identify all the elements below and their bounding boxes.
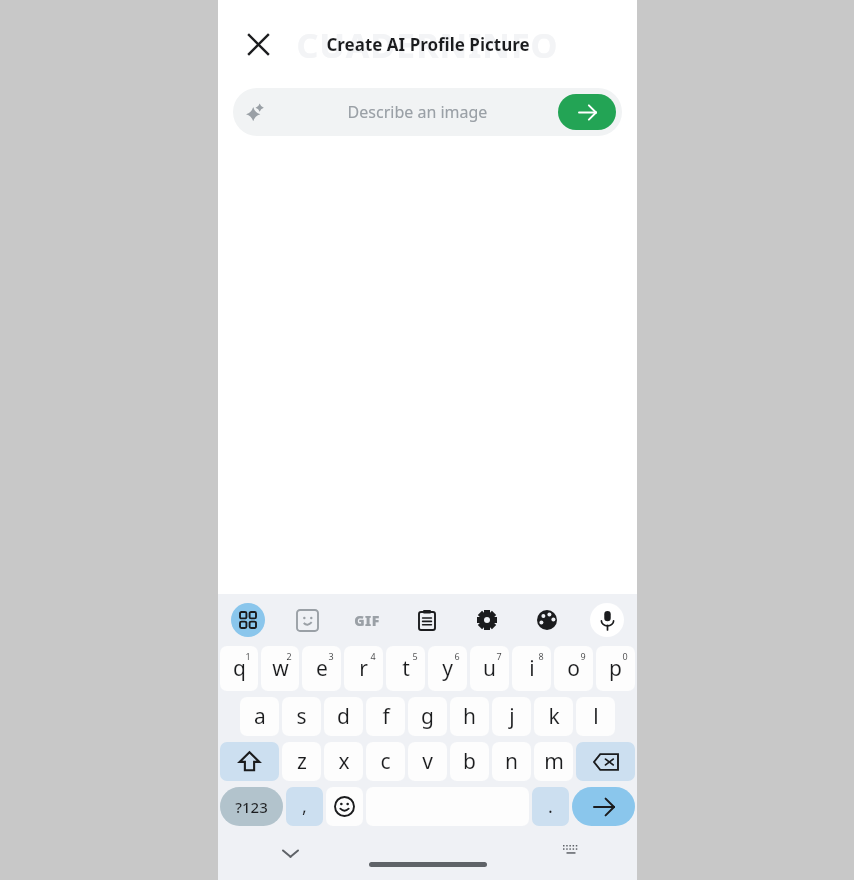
staticText: f bbox=[382, 702, 390, 731]
staticText: l bbox=[593, 702, 599, 731]
button[interactable]: r bbox=[344, 646, 383, 691]
button[interactable]: b bbox=[450, 742, 489, 781]
staticText: CUADERNINFO bbox=[296, 22, 559, 68]
staticText: 7 bbox=[496, 650, 502, 662]
staticText: 5 bbox=[412, 650, 418, 662]
button[interactable]: Stickers bbox=[277, 594, 337, 646]
button[interactable]: Hide keyboard bbox=[270, 833, 310, 873]
button[interactable]: p bbox=[596, 646, 635, 691]
button[interactable]: . bbox=[532, 787, 569, 826]
button[interactable]: Backspace bbox=[576, 742, 635, 781]
staticText: p bbox=[609, 654, 622, 683]
staticText: 0 bbox=[622, 650, 628, 662]
button[interactable]: a bbox=[240, 697, 279, 736]
button[interactable]: e bbox=[302, 646, 341, 691]
staticText: x bbox=[338, 747, 350, 776]
staticText: z bbox=[297, 747, 307, 776]
staticText: g bbox=[421, 702, 434, 731]
button[interactable]: Generate bbox=[558, 94, 616, 130]
staticText: a bbox=[254, 702, 266, 731]
button[interactable]: w bbox=[261, 646, 299, 691]
staticText: i bbox=[529, 654, 535, 683]
button[interactable]: Describe an image bbox=[233, 88, 622, 136]
button[interactable]: t bbox=[386, 646, 425, 691]
button[interactable]: n bbox=[492, 742, 531, 781]
button[interactable]: Switch keyboard bbox=[551, 833, 591, 873]
button[interactable]: Themes bbox=[517, 594, 577, 646]
button[interactable]: j bbox=[492, 697, 531, 736]
button[interactable]: q bbox=[220, 646, 258, 691]
button[interactable]: i bbox=[512, 646, 551, 691]
button[interactable]: GIF bbox=[337, 594, 397, 646]
button[interactable]: u bbox=[470, 646, 509, 691]
button[interactable]: y bbox=[428, 646, 467, 691]
button[interactable]: , bbox=[286, 787, 323, 826]
button[interactable]: x bbox=[324, 742, 363, 781]
staticText: h bbox=[463, 702, 476, 731]
button[interactable]: h bbox=[450, 697, 489, 736]
button[interactable]: Close bbox=[234, 20, 282, 68]
button[interactable]: Keyboard grid bbox=[218, 594, 277, 646]
button[interactable]: c bbox=[366, 742, 405, 781]
button[interactable]: l bbox=[576, 697, 615, 736]
staticText: s bbox=[296, 702, 307, 731]
button[interactable]: s bbox=[282, 697, 321, 736]
button[interactable]: m bbox=[534, 742, 573, 781]
staticText: t bbox=[402, 654, 410, 683]
button[interactable]: d bbox=[324, 697, 363, 736]
button[interactable]: Enter bbox=[572, 787, 635, 826]
staticText: . bbox=[548, 794, 553, 819]
button[interactable]: k bbox=[534, 697, 573, 736]
staticText: b bbox=[463, 747, 476, 776]
staticText: 1 bbox=[245, 650, 251, 662]
button[interactable]: Clipboard bbox=[397, 594, 457, 646]
button[interactable]: ?123 bbox=[220, 787, 283, 826]
staticText: n bbox=[505, 747, 518, 776]
staticText: r bbox=[359, 654, 368, 683]
button[interactable]: v bbox=[408, 742, 447, 781]
staticText: k bbox=[548, 702, 560, 731]
button[interactable]: Shift bbox=[220, 742, 279, 781]
button[interactable]: g bbox=[408, 697, 447, 736]
staticText: , bbox=[302, 794, 307, 819]
staticText: 9 bbox=[580, 650, 586, 662]
button[interactable]: o bbox=[554, 646, 593, 691]
button[interactable]: Settings bbox=[457, 594, 517, 646]
staticText: Create AI Profile Picture bbox=[326, 33, 530, 56]
staticText: 4 bbox=[370, 650, 376, 662]
staticText: GIF bbox=[354, 611, 380, 630]
staticText: q bbox=[233, 654, 246, 683]
button[interactable]: Emoji bbox=[326, 787, 363, 826]
staticText: e bbox=[316, 654, 328, 683]
staticText: m bbox=[544, 747, 564, 776]
staticText: d bbox=[337, 702, 350, 731]
staticText: w bbox=[272, 654, 289, 683]
staticText: o bbox=[567, 654, 580, 683]
staticText: j bbox=[509, 702, 515, 731]
staticText: Describe an image bbox=[277, 101, 558, 123]
button[interactable]: f bbox=[366, 697, 405, 736]
staticText: u bbox=[483, 654, 496, 683]
button[interactable]: z bbox=[282, 742, 321, 781]
staticText: 2 bbox=[286, 650, 292, 662]
staticText: y bbox=[442, 654, 453, 683]
staticText: 6 bbox=[454, 650, 460, 662]
staticText: c bbox=[380, 747, 391, 776]
button[interactable]: Voice input bbox=[577, 594, 637, 646]
staticText: v bbox=[422, 747, 433, 776]
staticText: 8 bbox=[538, 650, 544, 662]
staticText: ?123 bbox=[235, 797, 268, 817]
staticText: 3 bbox=[328, 650, 334, 662]
